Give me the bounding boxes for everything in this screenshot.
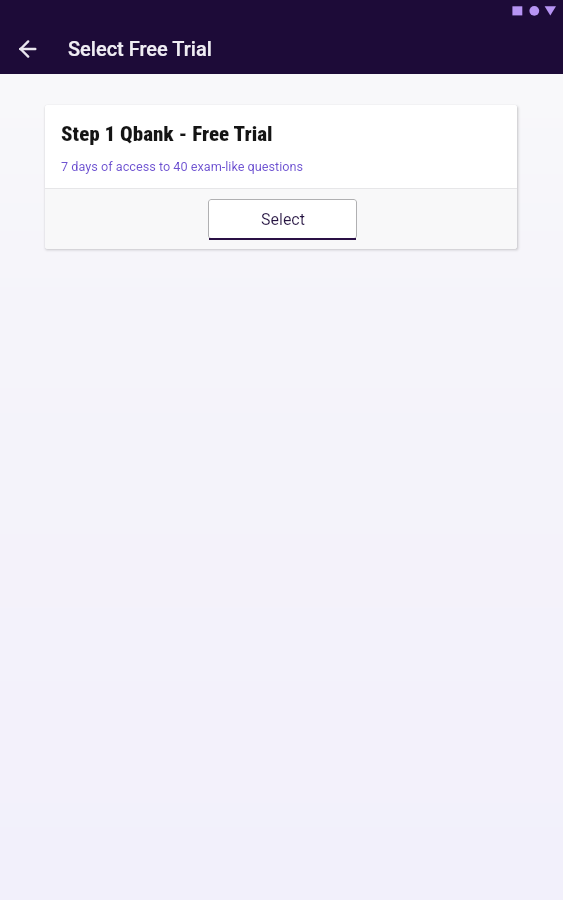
staticText: Select [261, 210, 305, 229]
button[interactable]: Select [208, 199, 357, 241]
staticText: 7 days of access to 40 exam-like questio… [61, 159, 304, 174]
button[interactable]: Navigate up [6, 25, 54, 73]
staticText: Step 1 Qbank - Free Trial [61, 122, 273, 147]
staticText: Select Free Trial [68, 37, 212, 60]
